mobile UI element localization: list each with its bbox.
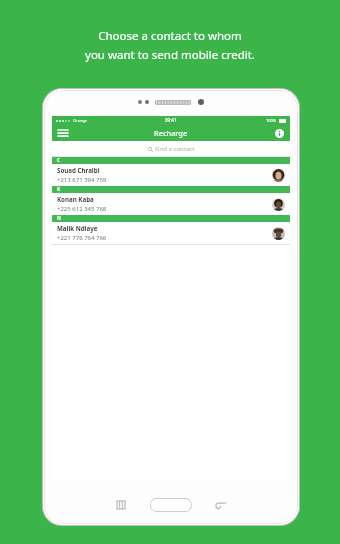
button[interactable]: Information xyxy=(271,125,287,141)
staticText: 09:41 xyxy=(165,117,177,123)
staticText: 100% xyxy=(266,118,277,123)
button[interactable]: Home xyxy=(150,498,192,512)
staticText: Find a contact xyxy=(155,145,195,153)
button[interactable]: Menu xyxy=(55,125,71,141)
staticText: Choose a contact to whom xyxy=(98,28,242,44)
button[interactable]: Malik Ndiaye xyxy=(52,222,290,244)
button[interactable]: Recent apps xyxy=(92,497,150,513)
staticText: C xyxy=(57,157,61,164)
staticText: Malik Ndiaye xyxy=(57,224,98,232)
staticText: N xyxy=(57,215,61,222)
staticText: +221 776 764 766 xyxy=(57,234,107,242)
staticText: +213 671 394 759 xyxy=(57,176,107,184)
button[interactable]: Find a contact xyxy=(52,141,290,156)
staticText: K xyxy=(57,186,61,193)
button[interactable]: Konan Kaba xyxy=(52,193,290,215)
staticText: Konan Kaba xyxy=(57,195,94,203)
button[interactable]: Souad Chraibi xyxy=(52,164,290,186)
staticText: you want to send mobile credit. xyxy=(85,47,255,63)
button[interactable]: Back xyxy=(192,497,250,513)
staticText: +225 612 345 768 xyxy=(57,205,107,213)
staticText: Recharge xyxy=(154,128,188,138)
staticText: Souad Chraibi xyxy=(57,166,100,174)
staticText: Orange xyxy=(73,118,88,123)
